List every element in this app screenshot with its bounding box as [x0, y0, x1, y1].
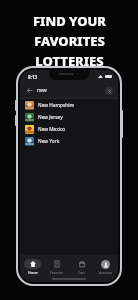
button[interactable]: New York [20, 135, 118, 147]
staticText: Favorite [50, 270, 63, 275]
button[interactable]: Favorite [45, 259, 68, 275]
staticText: FIND YOUR [33, 12, 106, 30]
staticText: New Mexico [38, 126, 66, 133]
staticText: Home [28, 270, 38, 275]
button[interactable]: Back [25, 86, 34, 95]
button[interactable]: Cart [70, 259, 93, 275]
staticText: new [37, 87, 105, 94]
button[interactable]: New Mexico [20, 123, 118, 135]
staticText: FAVORITES [34, 32, 105, 50]
button[interactable]: Clear search [105, 87, 113, 95]
staticText: Account [99, 270, 112, 275]
staticText: New York [38, 138, 60, 145]
button[interactable]: Account [94, 259, 117, 275]
button[interactable]: Home [21, 259, 44, 275]
staticText: New Jersey [38, 114, 63, 121]
button[interactable]: New Jersey [20, 111, 118, 123]
staticText: 8:13 [28, 74, 38, 80]
staticText: Cart [78, 270, 85, 275]
button[interactable]: New Hampshire [20, 99, 118, 111]
staticText: LOTTERIES [35, 52, 104, 70]
staticText: New Hampshire [38, 102, 75, 109]
